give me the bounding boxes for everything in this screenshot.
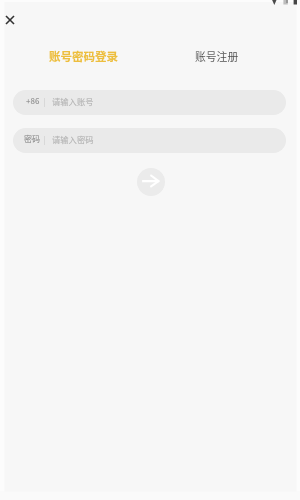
button[interactable]: Close	[0, 10, 20, 30]
button[interactable]: Submit	[137, 168, 165, 196]
button[interactable]: 密码	[13, 128, 286, 153]
staticText: 请输入账号	[52, 95, 94, 107]
staticText: 密码	[24, 133, 40, 145]
staticText: 请输入密码	[52, 133, 94, 145]
staticText: 账号注册	[195, 48, 239, 64]
button[interactable]: 账号密码登录	[48, 47, 119, 66]
button[interactable]: +86	[13, 90, 286, 115]
staticText: 账号密码登录	[49, 48, 118, 65]
button[interactable]: 账号注册	[194, 47, 240, 65]
staticText: +86	[26, 95, 40, 107]
